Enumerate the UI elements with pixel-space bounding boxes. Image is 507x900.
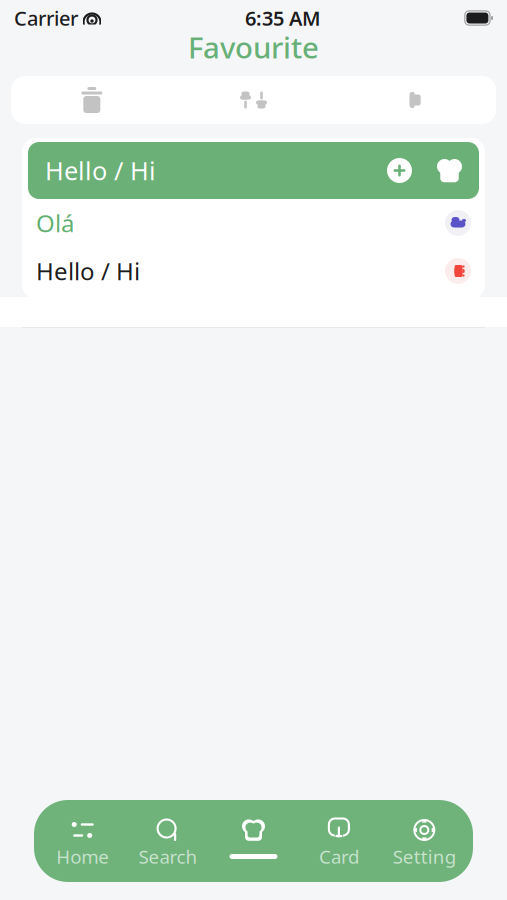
button[interactable]: Favourite <box>188 30 319 64</box>
staticText: Olá <box>36 207 74 239</box>
button[interactable]: Play all <box>334 76 496 124</box>
button[interactable]: Play audio <box>445 258 471 284</box>
button[interactable]: Sort <box>173 76 334 124</box>
button[interactable]: Card <box>296 805 382 877</box>
staticText: Hello / Hi <box>36 255 140 287</box>
button[interactable]: Olá <box>22 199 485 247</box>
staticText: Setting <box>393 844 456 869</box>
staticText: Favourite <box>188 27 319 66</box>
button[interactable] <box>211 805 296 877</box>
button[interactable]: Setting <box>382 805 467 877</box>
button[interactable]: Search <box>125 805 211 877</box>
button[interactable]: Hello / Hi <box>22 247 485 295</box>
button[interactable]: Delete <box>11 76 173 124</box>
staticText: 6:35 AM <box>245 5 321 31</box>
staticText: Carrier <box>14 5 78 31</box>
staticText: Home <box>56 844 109 869</box>
button[interactable]: Play slowly <box>445 210 471 236</box>
staticText: Hello / Hi <box>45 154 156 187</box>
button[interactable]: Home <box>40 805 125 877</box>
staticText: Search <box>139 844 198 869</box>
staticText: Card <box>319 844 359 869</box>
button[interactable]: Hello / Hi <box>28 142 479 199</box>
